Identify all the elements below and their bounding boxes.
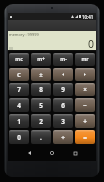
staticText: + [83,117,87,126]
staticText: 4 [17,101,21,110]
button[interactable]: 5 [31,98,51,112]
button[interactable]: 3 [53,114,73,128]
staticText: mc [15,56,23,63]
button[interactable]: 4 [9,98,29,112]
button[interactable]: m+ [31,53,51,66]
staticText: 5 [39,101,43,110]
button[interactable]: 2 [31,114,51,128]
staticText: − [83,101,87,110]
button[interactable]: Home [45,145,59,161]
staticText: 3 [61,117,65,126]
staticText: . [40,133,42,142]
staticText: 0 [88,37,95,51]
staticText: m+ [37,56,45,63]
button[interactable]: ÷ [53,130,73,144]
staticText: 8 [39,85,43,94]
staticText: 2 [39,117,43,126]
button[interactable] [75,68,95,81]
button[interactable]: − [75,98,95,112]
button[interactable]: 0 [9,130,29,144]
button[interactable]: C [9,68,29,81]
button[interactable]: mr [75,53,95,66]
staticText: m- [60,56,67,63]
staticText: 10:41 [82,14,94,20]
staticText: = [83,133,87,142]
button[interactable]: 9 [53,83,73,96]
button[interactable]: . [31,130,51,144]
staticText: ÷ [61,133,65,142]
button[interactable]: Recents [68,145,82,161]
button[interactable]: × [75,83,95,96]
button[interactable]: = [75,130,95,144]
staticText: 0 [17,133,21,142]
staticText: 9 [61,85,65,94]
staticText: ± [39,71,43,79]
staticText: 6 [61,101,65,110]
button[interactable]: 1 [9,114,29,128]
button[interactable]: Back [22,145,36,161]
button[interactable]: ± [31,68,51,81]
button[interactable]: 7 [9,83,29,96]
button[interactable]: + [75,114,95,128]
button[interactable]: m- [53,53,73,66]
staticText: memory : 99999 [9,32,39,37]
button[interactable] [53,68,73,81]
staticText: C [17,71,21,79]
button[interactable]: 8 [31,83,51,96]
staticText: 7 [17,85,21,94]
staticText: × [83,85,87,94]
button[interactable]: 6 [53,98,73,112]
staticText: mr [81,56,89,63]
staticText: 1 [17,117,21,126]
button[interactable]: mc [9,53,29,66]
